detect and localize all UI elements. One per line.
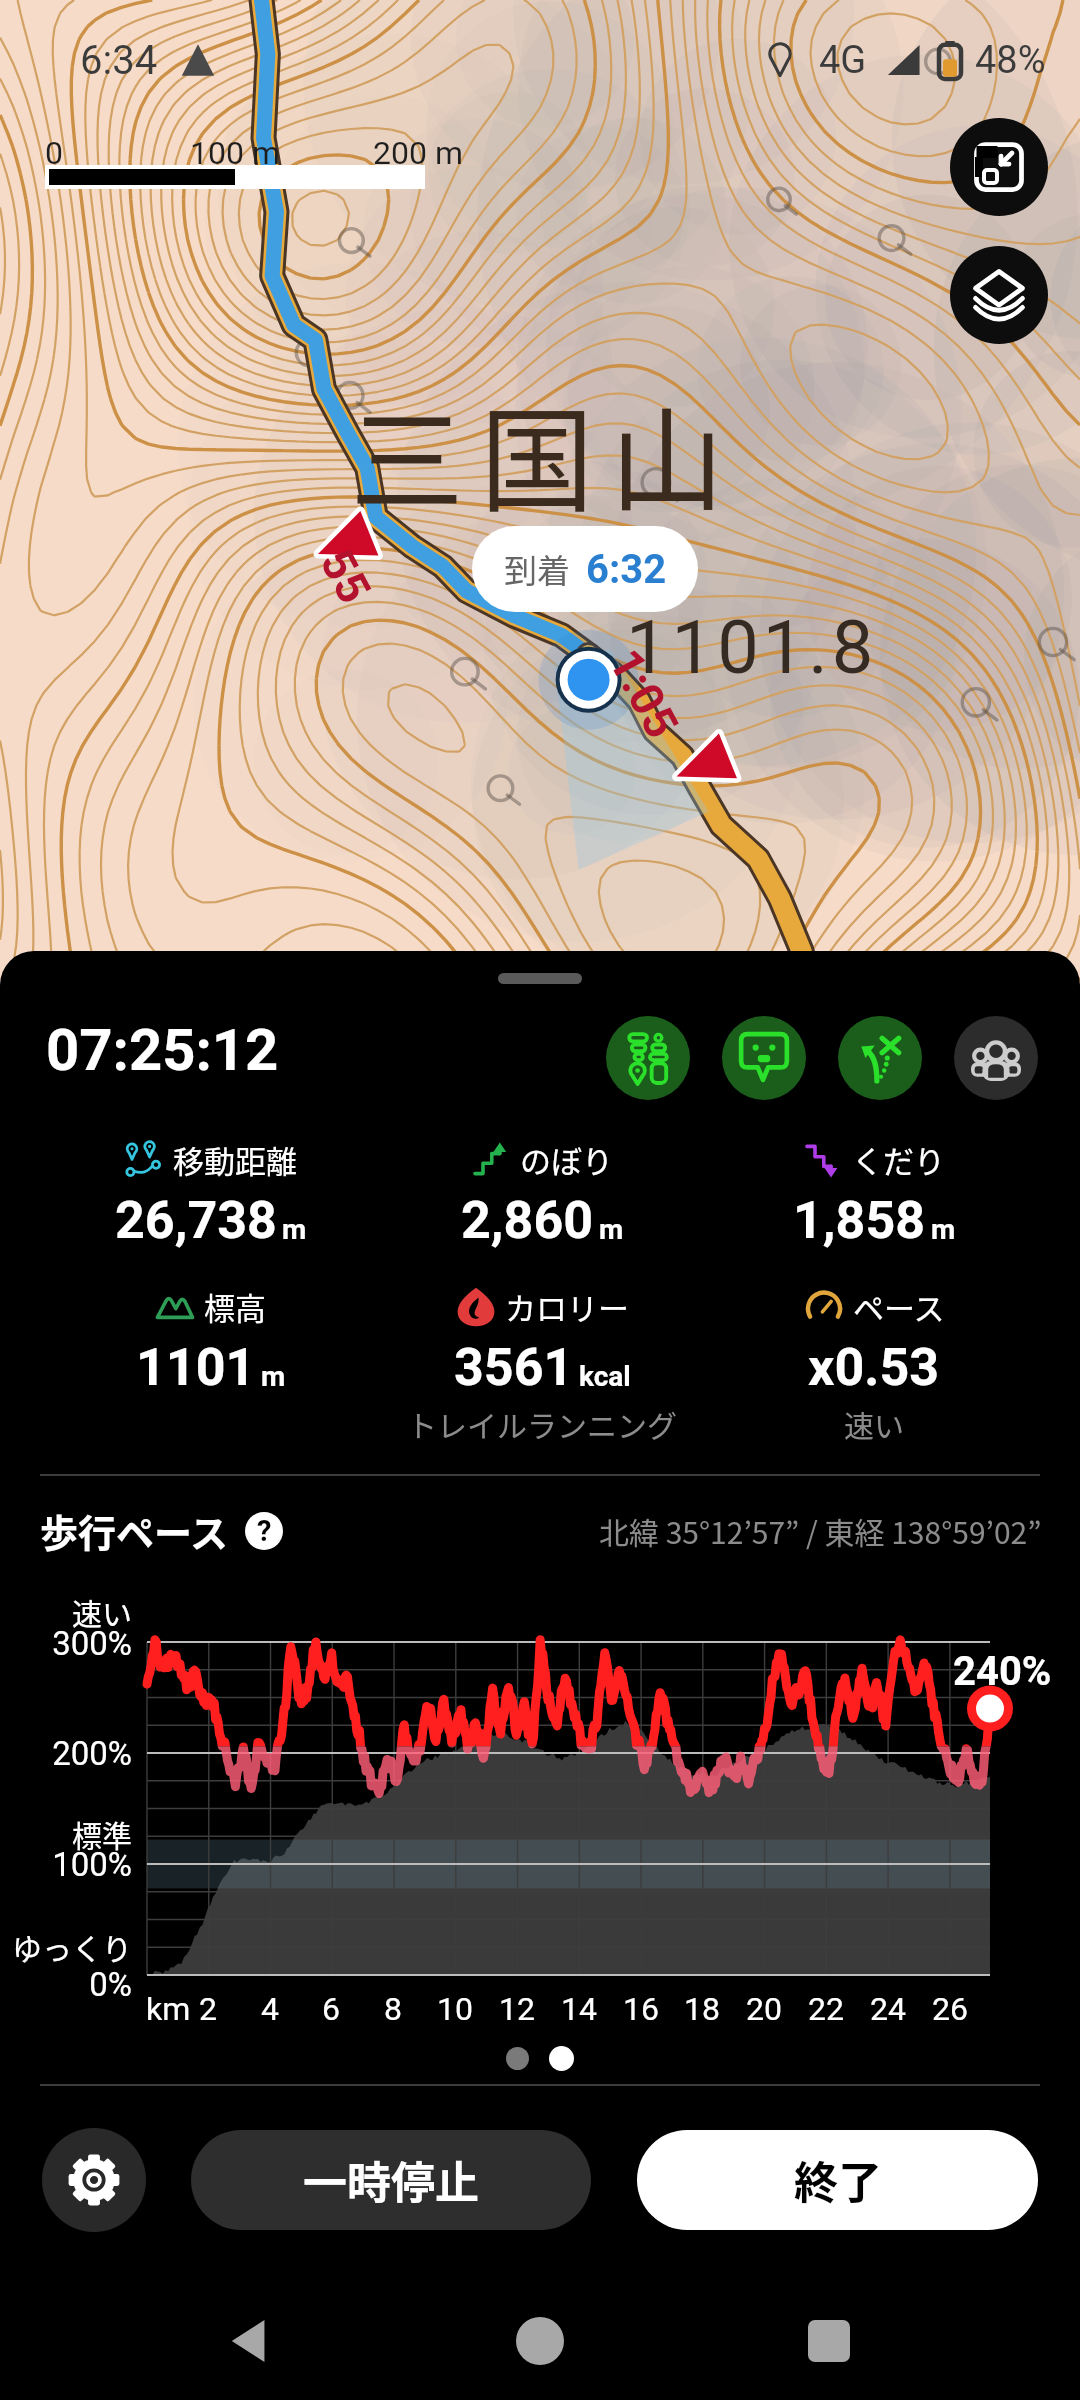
- staticText: 10: [433, 1990, 477, 2028]
- staticText: 18: [680, 1990, 724, 2028]
- staticText: 到着: [504, 545, 570, 593]
- staticText: 22: [804, 1990, 848, 2028]
- staticText: 1,858: [793, 1190, 926, 1251]
- button[interactable]: Route: [838, 1016, 922, 1100]
- staticText: 12: [495, 1990, 539, 2028]
- staticText: 1101.8: [626, 604, 878, 691]
- staticText: 14: [557, 1990, 601, 2028]
- button[interactable]: Recents: [791, 2303, 867, 2379]
- staticText: 200%: [0, 1734, 132, 1773]
- staticText: ゆっくり: [0, 1925, 132, 1968]
- staticText: 200 m: [373, 134, 463, 172]
- staticText: 16: [619, 1990, 663, 2028]
- staticText: 4: [248, 1990, 292, 2028]
- staticText: km: [146, 1990, 191, 2028]
- staticText: kcal: [579, 1360, 631, 1393]
- staticText: 6:32: [586, 546, 667, 593]
- staticText: 1:05: [598, 640, 690, 747]
- staticText: 26,738: [115, 1190, 277, 1251]
- staticText: 24: [866, 1990, 910, 2028]
- staticText: 北緯 35°12’57” / 東経 138°59’02”: [599, 1509, 1042, 1552]
- staticText: 標高: [204, 1284, 266, 1329]
- staticText: m: [931, 1213, 956, 1246]
- staticText: 速い: [0, 1590, 132, 1633]
- button[interactable]: Waypoints: [606, 1016, 690, 1100]
- staticText: 三国山: [350, 370, 741, 535]
- staticText: 1101: [136, 1337, 256, 1398]
- staticText: 48%: [975, 38, 1046, 83]
- staticText: 240%: [953, 1648, 1052, 1695]
- staticText: ペース: [853, 1284, 945, 1329]
- staticText: カロリー: [505, 1284, 629, 1329]
- staticText: 移動距離: [173, 1137, 297, 1182]
- staticText: 終了: [794, 2148, 882, 2212]
- button[interactable]: Map layers: [950, 246, 1048, 344]
- button[interactable]: Help: [245, 1512, 283, 1550]
- staticText: トレイルランニング: [407, 1402, 677, 1445]
- button[interactable]: Back: [213, 2303, 289, 2379]
- button[interactable]: Settings: [42, 2128, 146, 2232]
- button[interactable]: 一時停止: [191, 2130, 591, 2230]
- button[interactable]: 到着: [472, 526, 698, 612]
- staticText: 0: [45, 134, 63, 172]
- staticText: 3561: [454, 1337, 574, 1398]
- staticText: 300%: [0, 1624, 132, 1663]
- staticText: m: [599, 1213, 624, 1246]
- staticText: x0.53: [808, 1337, 940, 1398]
- staticText: 100 m: [190, 134, 280, 172]
- staticText: 6: [309, 1990, 353, 2028]
- button[interactable]: Members: [954, 1016, 1038, 1100]
- button[interactable]: Exit fullscreen: [950, 118, 1048, 216]
- staticText: m: [282, 1213, 307, 1246]
- staticText: 一時停止: [303, 2148, 479, 2212]
- staticText: 2: [186, 1990, 230, 2028]
- staticText: 55: [309, 540, 382, 612]
- staticText: 2,860: [461, 1190, 594, 1251]
- staticText: 0%: [0, 1965, 132, 2004]
- button[interactable]: 終了: [637, 2130, 1038, 2230]
- staticText: のぼり: [520, 1137, 613, 1182]
- staticText: 歩行ペース: [40, 1503, 229, 1558]
- staticText: 20: [742, 1990, 786, 2028]
- staticText: 26: [928, 1990, 972, 2028]
- staticText: 標準: [0, 1812, 132, 1855]
- staticText: 8: [371, 1990, 415, 2028]
- staticText: 07:25:12: [46, 1016, 279, 1084]
- button[interactable]: Home: [502, 2303, 578, 2379]
- staticText: 100%: [0, 1845, 132, 1884]
- staticText: 6:34: [80, 37, 158, 84]
- staticText: ?: [257, 1514, 272, 1548]
- staticText: 速い: [844, 1402, 904, 1445]
- staticText: 4G: [819, 38, 867, 83]
- staticText: m: [261, 1360, 286, 1393]
- button[interactable]: Messages: [722, 1016, 806, 1100]
- staticText: くだり: [852, 1137, 945, 1182]
